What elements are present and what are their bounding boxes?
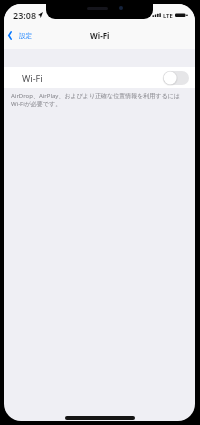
button[interactable]: Wi-Fi [4, 67, 195, 88]
button[interactable]: 設定 [4, 28, 41, 43]
button[interactable]: Wi-Fi toggle [163, 71, 189, 85]
staticText: Wi-Fi [22, 72, 43, 84]
staticText: LTE [163, 12, 173, 20]
staticText: Wi-Fi [90, 30, 110, 41]
staticText: Wi-Fiが必要です。 [11, 100, 62, 108]
staticText: 設定 [19, 32, 33, 40]
staticText: AirDrop、AirPlay、およびより正確な位置情報を利用するには [11, 92, 180, 100]
staticText: 23:08 [13, 9, 37, 21]
